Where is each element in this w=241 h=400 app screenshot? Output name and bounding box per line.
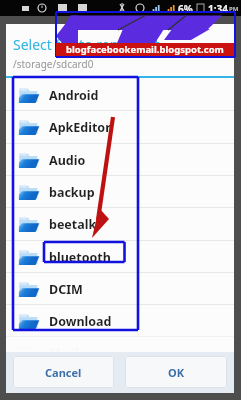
staticText: ApkEditor — [49, 119, 111, 136]
staticText: Cancel — [45, 365, 82, 380]
staticText: Android — [49, 87, 99, 104]
staticText: /storage/sdcard0 — [13, 57, 94, 71]
button[interactable]: Android — [6, 79, 234, 111]
staticText: OK — [168, 365, 185, 380]
other: Annotation marks — [0, 0, 241, 400]
staticText: blogfacebookemail.blogspot.com — [66, 43, 224, 56]
button[interactable]: Audio — [6, 144, 234, 176]
button[interactable]: beetalk — [6, 208, 234, 240]
staticText: 6% — [178, 2, 193, 16]
staticText: 1:34 — [208, 2, 228, 16]
staticText: beetalk — [49, 216, 97, 233]
staticText: bluetooth — [49, 249, 111, 266]
staticText: Audio — [49, 152, 86, 169]
button[interactable]: DCIM — [6, 273, 234, 305]
staticText: PM — [229, 5, 239, 13]
staticText: Download — [49, 313, 112, 330]
button[interactable]: bluetooth — [6, 241, 234, 273]
button[interactable]: Download — [6, 305, 234, 337]
button[interactable]: ApkEditor — [6, 111, 234, 143]
button[interactable]: backup — [6, 176, 234, 208]
button[interactable]: OK — [125, 356, 227, 388]
staticText: Select file to rename it — [13, 35, 160, 54]
button[interactable]: Cancel — [13, 356, 114, 388]
staticText: backup — [49, 184, 95, 201]
staticText: DCIM — [49, 281, 83, 298]
